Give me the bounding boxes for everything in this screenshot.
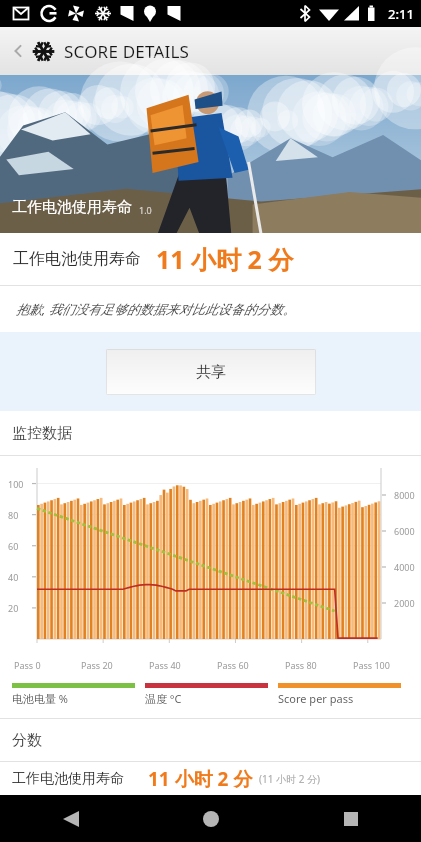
staticText: 1.0: [139, 204, 152, 216]
staticText: 工作电池使用寿命: [13, 249, 141, 269]
staticText: 60: [8, 540, 19, 552]
staticText: Pass 20: [81, 659, 113, 671]
staticText: 6000: [394, 525, 415, 537]
staticText: 80: [8, 509, 19, 521]
button[interactable]: Recent apps: [281, 795, 421, 842]
staticText: 分数: [12, 731, 42, 750]
staticText: Pass 80: [285, 659, 317, 671]
staticText: 温度 °C: [145, 691, 182, 706]
staticText: 100: [8, 478, 24, 490]
button[interactable]: 工作电池使用寿命: [0, 762, 421, 795]
staticText: 共享: [196, 363, 226, 382]
staticText: 2:11: [388, 5, 414, 23]
staticText: 11 小时 2 分: [156, 242, 294, 276]
staticText: 40: [8, 571, 19, 583]
staticText: 监控数据: [12, 424, 72, 443]
staticText: 20: [8, 602, 19, 614]
staticText: 电池电量 %: [12, 691, 69, 706]
staticText: (11 小时 2 分): [259, 772, 320, 786]
button[interactable]: 工作电池使用寿命: [0, 233, 421, 285]
button[interactable]: Back: [4, 37, 32, 65]
staticText: 2000: [394, 597, 415, 609]
staticText: 8000: [394, 489, 415, 501]
staticText: 抱歉, 我们没有足够的数据来对比此设备的分数。: [16, 300, 296, 318]
button[interactable]: Back: [0, 795, 141, 842]
staticText: Score per pass: [278, 691, 354, 706]
staticText: Pass 100: [353, 659, 390, 671]
staticText: SCORE DETAILS: [64, 40, 190, 63]
staticText: 工作电池使用寿命: [12, 770, 124, 788]
button[interactable]: 共享: [106, 349, 316, 395]
staticText: Pass 60: [217, 659, 249, 671]
staticText: 4000: [394, 561, 415, 573]
button[interactable]: Home: [141, 795, 281, 842]
staticText: Pass 40: [149, 659, 181, 671]
staticText: 工作电池使用寿命: [12, 198, 132, 217]
staticText: 11 小时 2 分: [148, 766, 253, 792]
staticText: Pass 0: [14, 659, 41, 671]
